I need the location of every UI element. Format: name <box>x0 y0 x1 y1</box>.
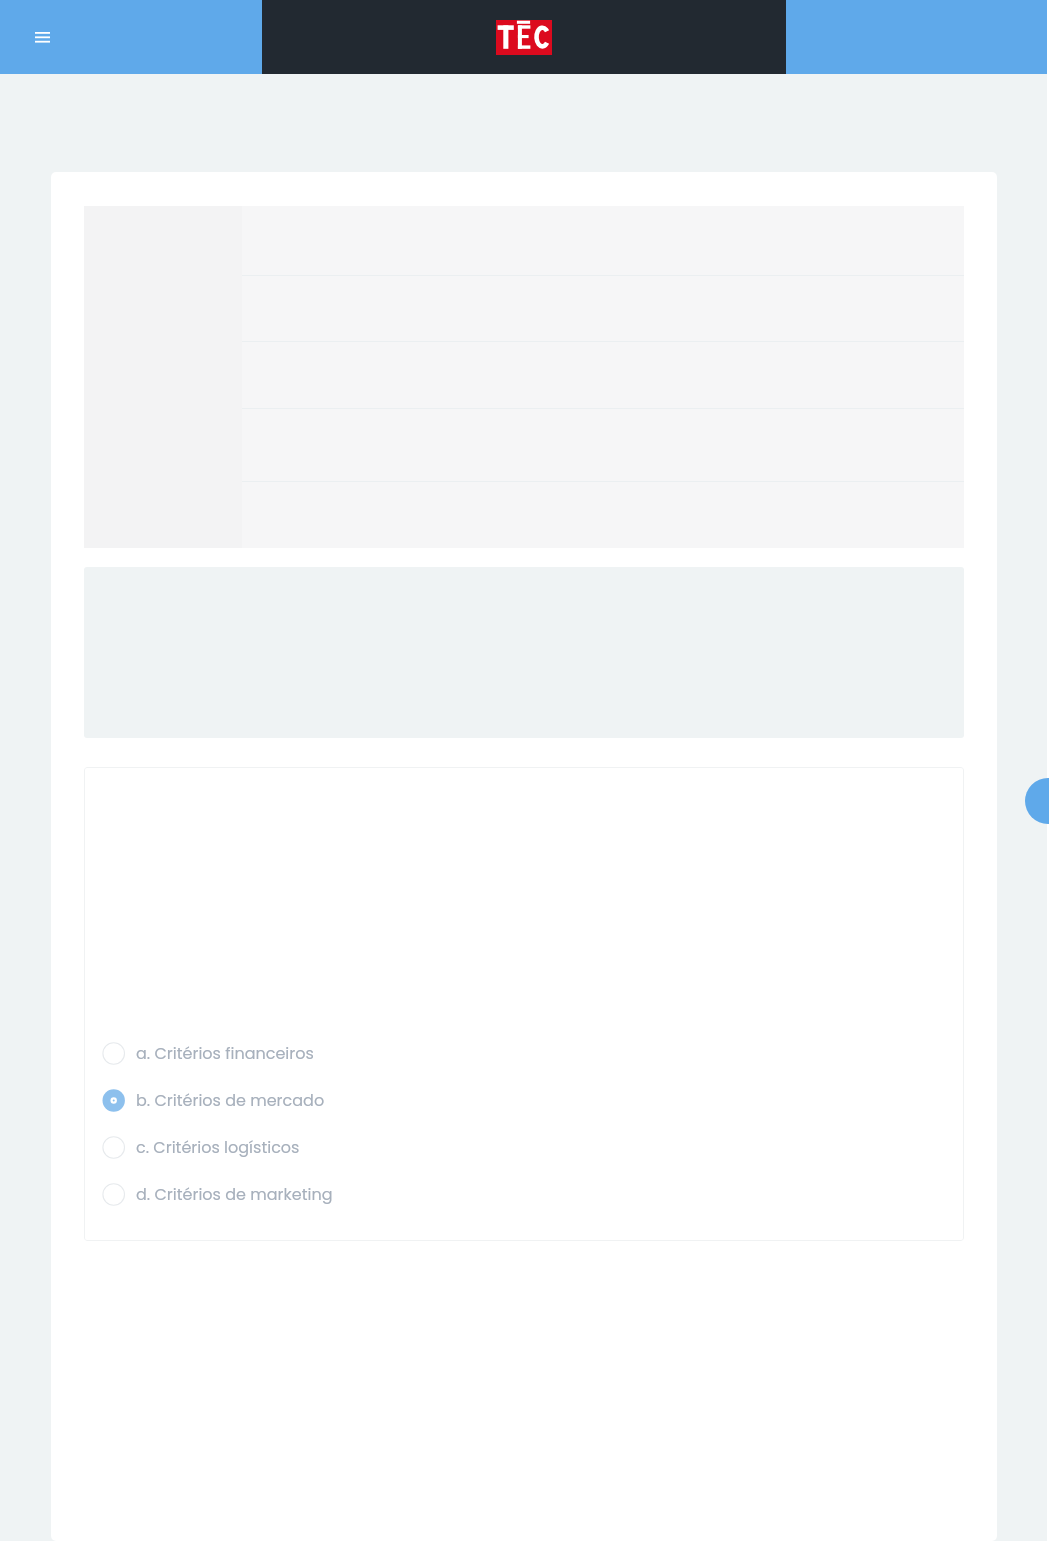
button[interactable]: TEC <box>496 20 552 55</box>
button[interactable]: Ajuda <box>1025 778 1049 824</box>
staticText: d. Critérios de marketing <box>136 1183 333 1205</box>
button[interactable]: d. Critérios de marketing <box>84 1171 964 1218</box>
button[interactable]: b. Critérios de mercado <box>84 1077 964 1124</box>
button[interactable]: a. Critérios financeiros <box>84 1030 964 1077</box>
staticText: a. Critérios financeiros <box>136 1042 314 1064</box>
staticText: c. Critérios logísticos <box>136 1136 300 1158</box>
button[interactable]: Menu <box>22 17 62 57</box>
staticText: b. Critérios de mercado <box>136 1089 325 1111</box>
button[interactable]: c. Critérios logísticos <box>84 1124 964 1171</box>
